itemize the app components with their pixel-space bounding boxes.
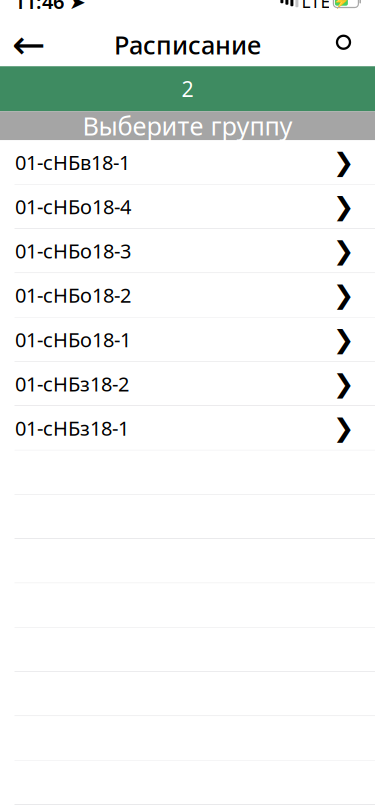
button[interactable]: 01-сНБв18-1 [0,140,375,185]
staticText: 01-сНБо18-2 [15,282,131,308]
button[interactable]: 01-сНБз18-1 [0,406,375,450]
staticText: ❯ [333,369,354,398]
button[interactable]: Search [321,23,371,66]
staticText: LTE [301,0,330,13]
staticText: ❯ [333,414,354,442]
staticText: 01-сНБо18-1 [15,326,131,353]
staticText: ❯ [333,148,354,177]
staticText: 01-сНБз18-2 [15,370,129,397]
staticText: Выберите группу [82,109,292,142]
staticText: 11:46 ➤ [14,0,86,15]
staticText: ❯ [333,236,354,265]
button[interactable]: Back [4,23,54,66]
staticText: ⚡ [333,0,350,9]
staticText: 2 [181,75,193,103]
button[interactable]: 01-сНБо18-3 [0,229,375,273]
button[interactable]: 01-сНБо18-2 [0,273,375,317]
staticText: Расписание [114,28,261,61]
staticText: ❯ [333,281,354,309]
staticText: ← [12,22,46,67]
staticText: 01-сНБо18-3 [15,237,131,264]
staticText: ❯ [333,192,354,221]
staticText: 01-сНБв18-1 [15,149,130,175]
button[interactable]: 01-сНБз18-2 [0,362,375,406]
button[interactable]: 01-сНБо18-1 [0,317,375,362]
staticText: 01-сНБз18-1 [15,415,129,441]
staticText: ❯ [333,325,354,354]
staticText: 01-сНБо18-4 [15,193,131,220]
button[interactable]: 01-сНБо18-4 [0,185,375,229]
